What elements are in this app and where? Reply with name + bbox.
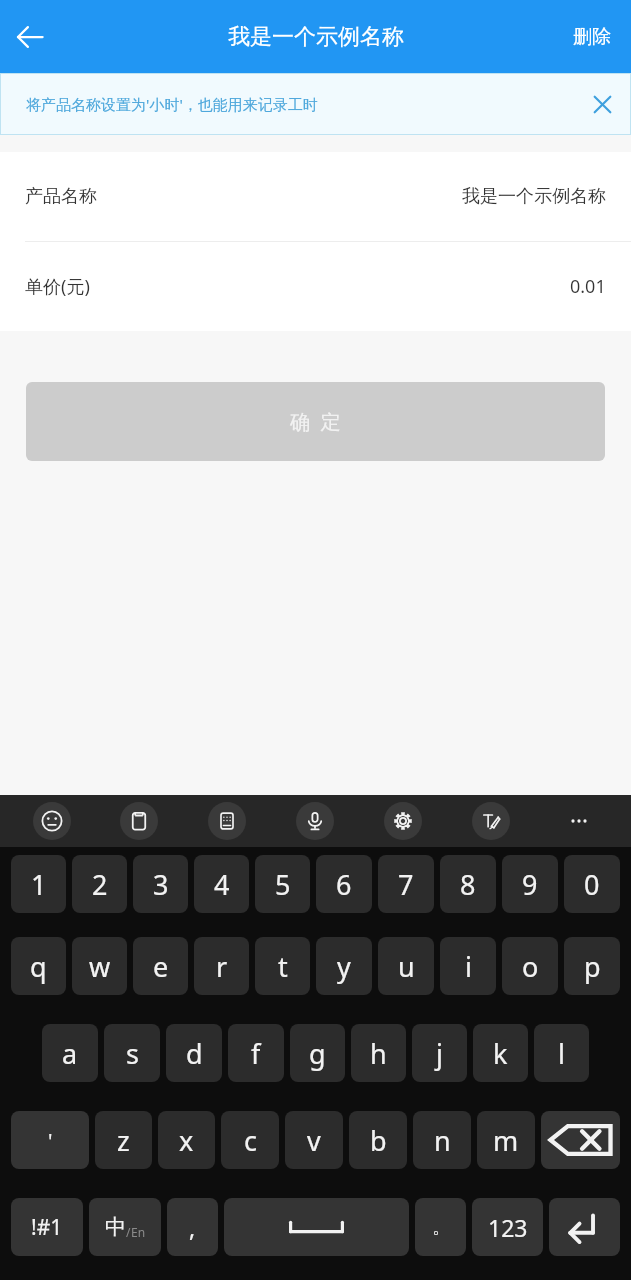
button[interactable]: g: [290, 1024, 345, 1082]
button[interactable]: z: [95, 1111, 152, 1169]
staticText: 删除: [573, 25, 611, 49]
button[interactable]: 5: [255, 855, 310, 913]
button[interactable]: Backspace: [541, 1111, 620, 1169]
staticText: 4: [214, 866, 230, 903]
staticText: h: [370, 1035, 387, 1072]
staticText: 中: [105, 1214, 126, 1240]
button[interactable]: 4: [194, 855, 249, 913]
button[interactable]: Emoji: [33, 802, 71, 840]
staticText: l: [558, 1035, 565, 1072]
button[interactable]: Handwriting: [472, 802, 510, 840]
staticText: 123: [488, 1212, 528, 1243]
button[interactable]: j: [412, 1024, 467, 1082]
button[interactable]: v: [285, 1111, 343, 1169]
staticText: 2: [92, 866, 108, 903]
button[interactable]: More: [535, 795, 623, 847]
staticText: k: [493, 1035, 508, 1072]
staticText: o: [522, 948, 539, 985]
staticText: 6: [336, 866, 352, 903]
staticText: 产品名称: [25, 185, 97, 208]
staticText: 确 定: [290, 408, 341, 435]
staticText: z: [117, 1122, 130, 1159]
button[interactable]: 1: [11, 855, 66, 913]
staticText: b: [370, 1122, 387, 1159]
button[interactable]: 123: [472, 1198, 543, 1256]
button[interactable]: k: [473, 1024, 528, 1082]
button[interactable]: Close banner: [574, 76, 630, 132]
button[interactable]: l: [534, 1024, 589, 1082]
button[interactable]: 9: [502, 855, 558, 913]
staticText: v: [307, 1122, 321, 1159]
button[interactable]: 6: [316, 855, 372, 913]
staticText: a: [62, 1035, 78, 1072]
button[interactable]: ,: [167, 1198, 218, 1256]
staticText: 。: [432, 1216, 450, 1239]
button[interactable]: f: [228, 1024, 284, 1082]
staticText: ': [48, 1127, 53, 1154]
button[interactable]: Clipboard: [120, 802, 158, 840]
button[interactable]: q: [11, 937, 66, 995]
staticText: y: [337, 948, 351, 985]
button[interactable]: Back: [0, 7, 60, 67]
staticText: x: [179, 1122, 194, 1159]
button[interactable]: n: [413, 1111, 471, 1169]
staticText: 9: [522, 866, 538, 903]
staticText: g: [309, 1035, 326, 1072]
button[interactable]: s: [104, 1024, 160, 1082]
button[interactable]: Voice input: [296, 802, 334, 840]
button[interactable]: h: [351, 1024, 406, 1082]
button[interactable]: u: [378, 937, 434, 995]
staticText: m: [493, 1122, 519, 1159]
button[interactable]: w: [72, 937, 127, 995]
staticText: n: [434, 1122, 451, 1159]
button[interactable]: o: [502, 937, 558, 995]
button[interactable]: !#1: [11, 1198, 83, 1256]
button[interactable]: 2: [72, 855, 127, 913]
button[interactable]: ': [11, 1111, 89, 1169]
button[interactable]: t: [255, 937, 310, 995]
button[interactable]: r: [194, 937, 249, 995]
button[interactable]: i: [440, 937, 496, 995]
button[interactable]: 产品名称: [0, 152, 631, 241]
button[interactable]: 7: [378, 855, 434, 913]
staticText: c: [244, 1122, 257, 1159]
button[interactable]: b: [349, 1111, 407, 1169]
staticText: 8: [460, 866, 476, 903]
button[interactable]: 中: [89, 1198, 161, 1256]
button[interactable]: x: [158, 1111, 215, 1169]
button[interactable]: e: [133, 937, 188, 995]
staticText: /: [126, 1224, 131, 1240]
button[interactable]: d: [166, 1024, 222, 1082]
button[interactable]: p: [564, 937, 620, 995]
staticText: En: [131, 1224, 146, 1240]
button[interactable]: m: [477, 1111, 535, 1169]
button[interactable]: Space: [224, 1198, 409, 1256]
button[interactable]: Switch keyboard: [208, 802, 246, 840]
button[interactable]: 3: [133, 855, 188, 913]
staticText: 5: [275, 866, 291, 903]
staticText: t: [278, 948, 288, 985]
staticText: q: [30, 948, 47, 985]
staticText: f: [251, 1035, 261, 1072]
button[interactable]: 单价(元): [0, 242, 631, 331]
button[interactable]: y: [316, 937, 372, 995]
staticText: e: [153, 948, 169, 985]
staticText: i: [465, 948, 472, 985]
staticText: 1: [31, 866, 47, 903]
button[interactable]: Settings: [384, 802, 422, 840]
staticText: 我是一个示例名称: [462, 185, 606, 208]
button[interactable]: 0: [564, 855, 620, 913]
button[interactable]: 8: [440, 855, 496, 913]
staticText: 单价(元): [25, 274, 90, 299]
staticText: s: [126, 1035, 139, 1072]
staticText: ,: [189, 1212, 196, 1243]
button[interactable]: Enter: [549, 1198, 620, 1256]
staticText: 3: [153, 866, 169, 903]
staticText: d: [186, 1035, 203, 1072]
button[interactable]: 删除: [553, 0, 631, 73]
button[interactable]: c: [221, 1111, 279, 1169]
button[interactable]: 。: [415, 1198, 466, 1256]
button[interactable]: a: [42, 1024, 98, 1082]
staticText: u: [398, 948, 415, 985]
